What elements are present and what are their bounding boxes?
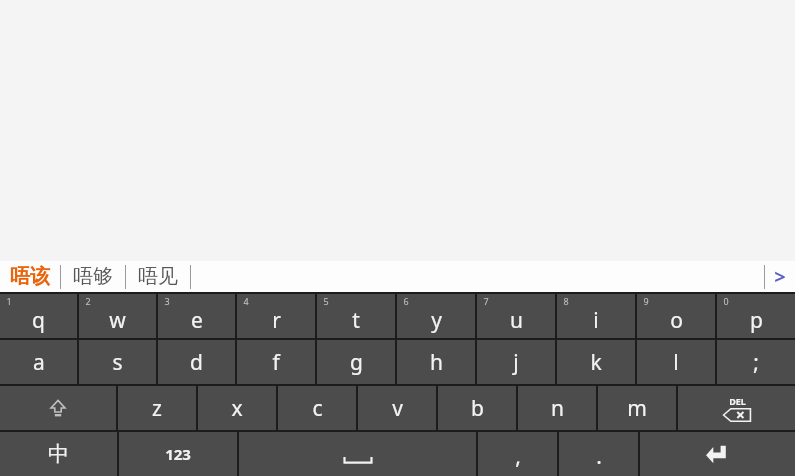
staticText: 123 xyxy=(165,444,191,464)
button[interactable]: z xyxy=(118,386,196,430)
staticText: n xyxy=(551,394,564,423)
button[interactable]: 8 xyxy=(557,294,635,338)
staticText: 唔见 xyxy=(138,264,178,289)
button[interactable]: 2 xyxy=(79,294,156,338)
button[interactable]: 0 xyxy=(717,294,795,338)
button[interactable]: Space xyxy=(239,432,476,476)
staticText: > xyxy=(774,263,786,290)
button[interactable]: v xyxy=(358,386,436,430)
staticText: k xyxy=(590,348,602,377)
staticText: l xyxy=(673,348,679,377)
button[interactable]: l xyxy=(637,340,715,384)
staticText: f xyxy=(272,348,280,377)
staticText: j xyxy=(513,348,519,377)
button[interactable]: Enter xyxy=(640,432,795,476)
staticText: DEL xyxy=(729,395,746,407)
staticText: b xyxy=(471,394,484,423)
staticText: 1 xyxy=(6,295,12,307)
staticText: p xyxy=(750,306,763,335)
staticText: x xyxy=(231,394,243,423)
staticText: 3 xyxy=(164,295,170,307)
button[interactable]: ; xyxy=(717,340,795,384)
button[interactable]: a xyxy=(0,340,77,384)
button[interactable]: x xyxy=(198,386,276,430)
button[interactable]: Chinese input xyxy=(0,432,117,476)
button[interactable]: 1 xyxy=(0,294,77,338)
button[interactable]: b xyxy=(438,386,516,430)
staticText: m xyxy=(627,394,647,423)
button[interactable]: s xyxy=(79,340,156,384)
staticText: ; xyxy=(753,348,759,377)
staticText: 5 xyxy=(323,295,329,307)
staticText: 2 xyxy=(85,295,91,307)
button[interactable]: 唔见 xyxy=(126,261,190,292)
staticText: i xyxy=(593,306,599,335)
button[interactable]: 唔该 xyxy=(0,261,60,292)
button[interactable]: 6 xyxy=(397,294,475,338)
button[interactable]: Shift xyxy=(0,386,116,430)
staticText: , xyxy=(515,442,521,471)
staticText: 中 xyxy=(48,441,69,467)
staticText: v xyxy=(392,394,403,423)
button[interactable]: 4 xyxy=(237,294,315,338)
staticText: a xyxy=(33,348,45,377)
staticText: q xyxy=(32,306,45,335)
button[interactable]: j xyxy=(477,340,555,384)
button[interactable]: n xyxy=(518,386,596,430)
button[interactable]: Delete xyxy=(678,386,795,430)
button[interactable]: 9 xyxy=(637,294,715,338)
staticText: e xyxy=(191,306,203,335)
staticText: o xyxy=(670,306,683,335)
staticText: 9 xyxy=(643,295,649,307)
staticText: w xyxy=(109,306,126,335)
staticText: d xyxy=(190,348,203,377)
button[interactable]: d xyxy=(158,340,235,384)
button[interactable]: g xyxy=(317,340,395,384)
staticText: h xyxy=(430,348,443,377)
button[interactable]: 7 xyxy=(477,294,555,338)
staticText: g xyxy=(350,348,363,377)
staticText: 8 xyxy=(563,295,569,307)
button[interactable]: k xyxy=(557,340,635,384)
button[interactable]: f xyxy=(237,340,315,384)
staticText: y xyxy=(431,306,442,335)
staticText: z xyxy=(152,394,162,423)
button[interactable]: More candidates xyxy=(765,261,795,292)
staticText: s xyxy=(112,348,123,377)
button[interactable]: 唔够 xyxy=(61,261,125,292)
button[interactable]: c xyxy=(278,386,356,430)
staticText: 4 xyxy=(243,295,249,307)
staticText: 0 xyxy=(723,295,729,307)
button[interactable]: 5 xyxy=(317,294,395,338)
button[interactable]: h xyxy=(397,340,475,384)
staticText: 唔该 xyxy=(10,264,50,289)
button[interactable]: 123 xyxy=(119,432,237,476)
staticText: u xyxy=(510,306,523,335)
staticText: c xyxy=(312,394,323,423)
staticText: r xyxy=(272,306,281,335)
staticText: t xyxy=(352,306,360,335)
staticText: 6 xyxy=(403,295,409,307)
staticText: 7 xyxy=(483,295,489,307)
staticText: . xyxy=(596,442,602,471)
button[interactable]: m xyxy=(598,386,676,430)
staticText: 唔够 xyxy=(73,264,113,289)
button[interactable]: 3 xyxy=(158,294,235,338)
button[interactable]: , xyxy=(478,432,557,476)
button[interactable]: . xyxy=(559,432,638,476)
